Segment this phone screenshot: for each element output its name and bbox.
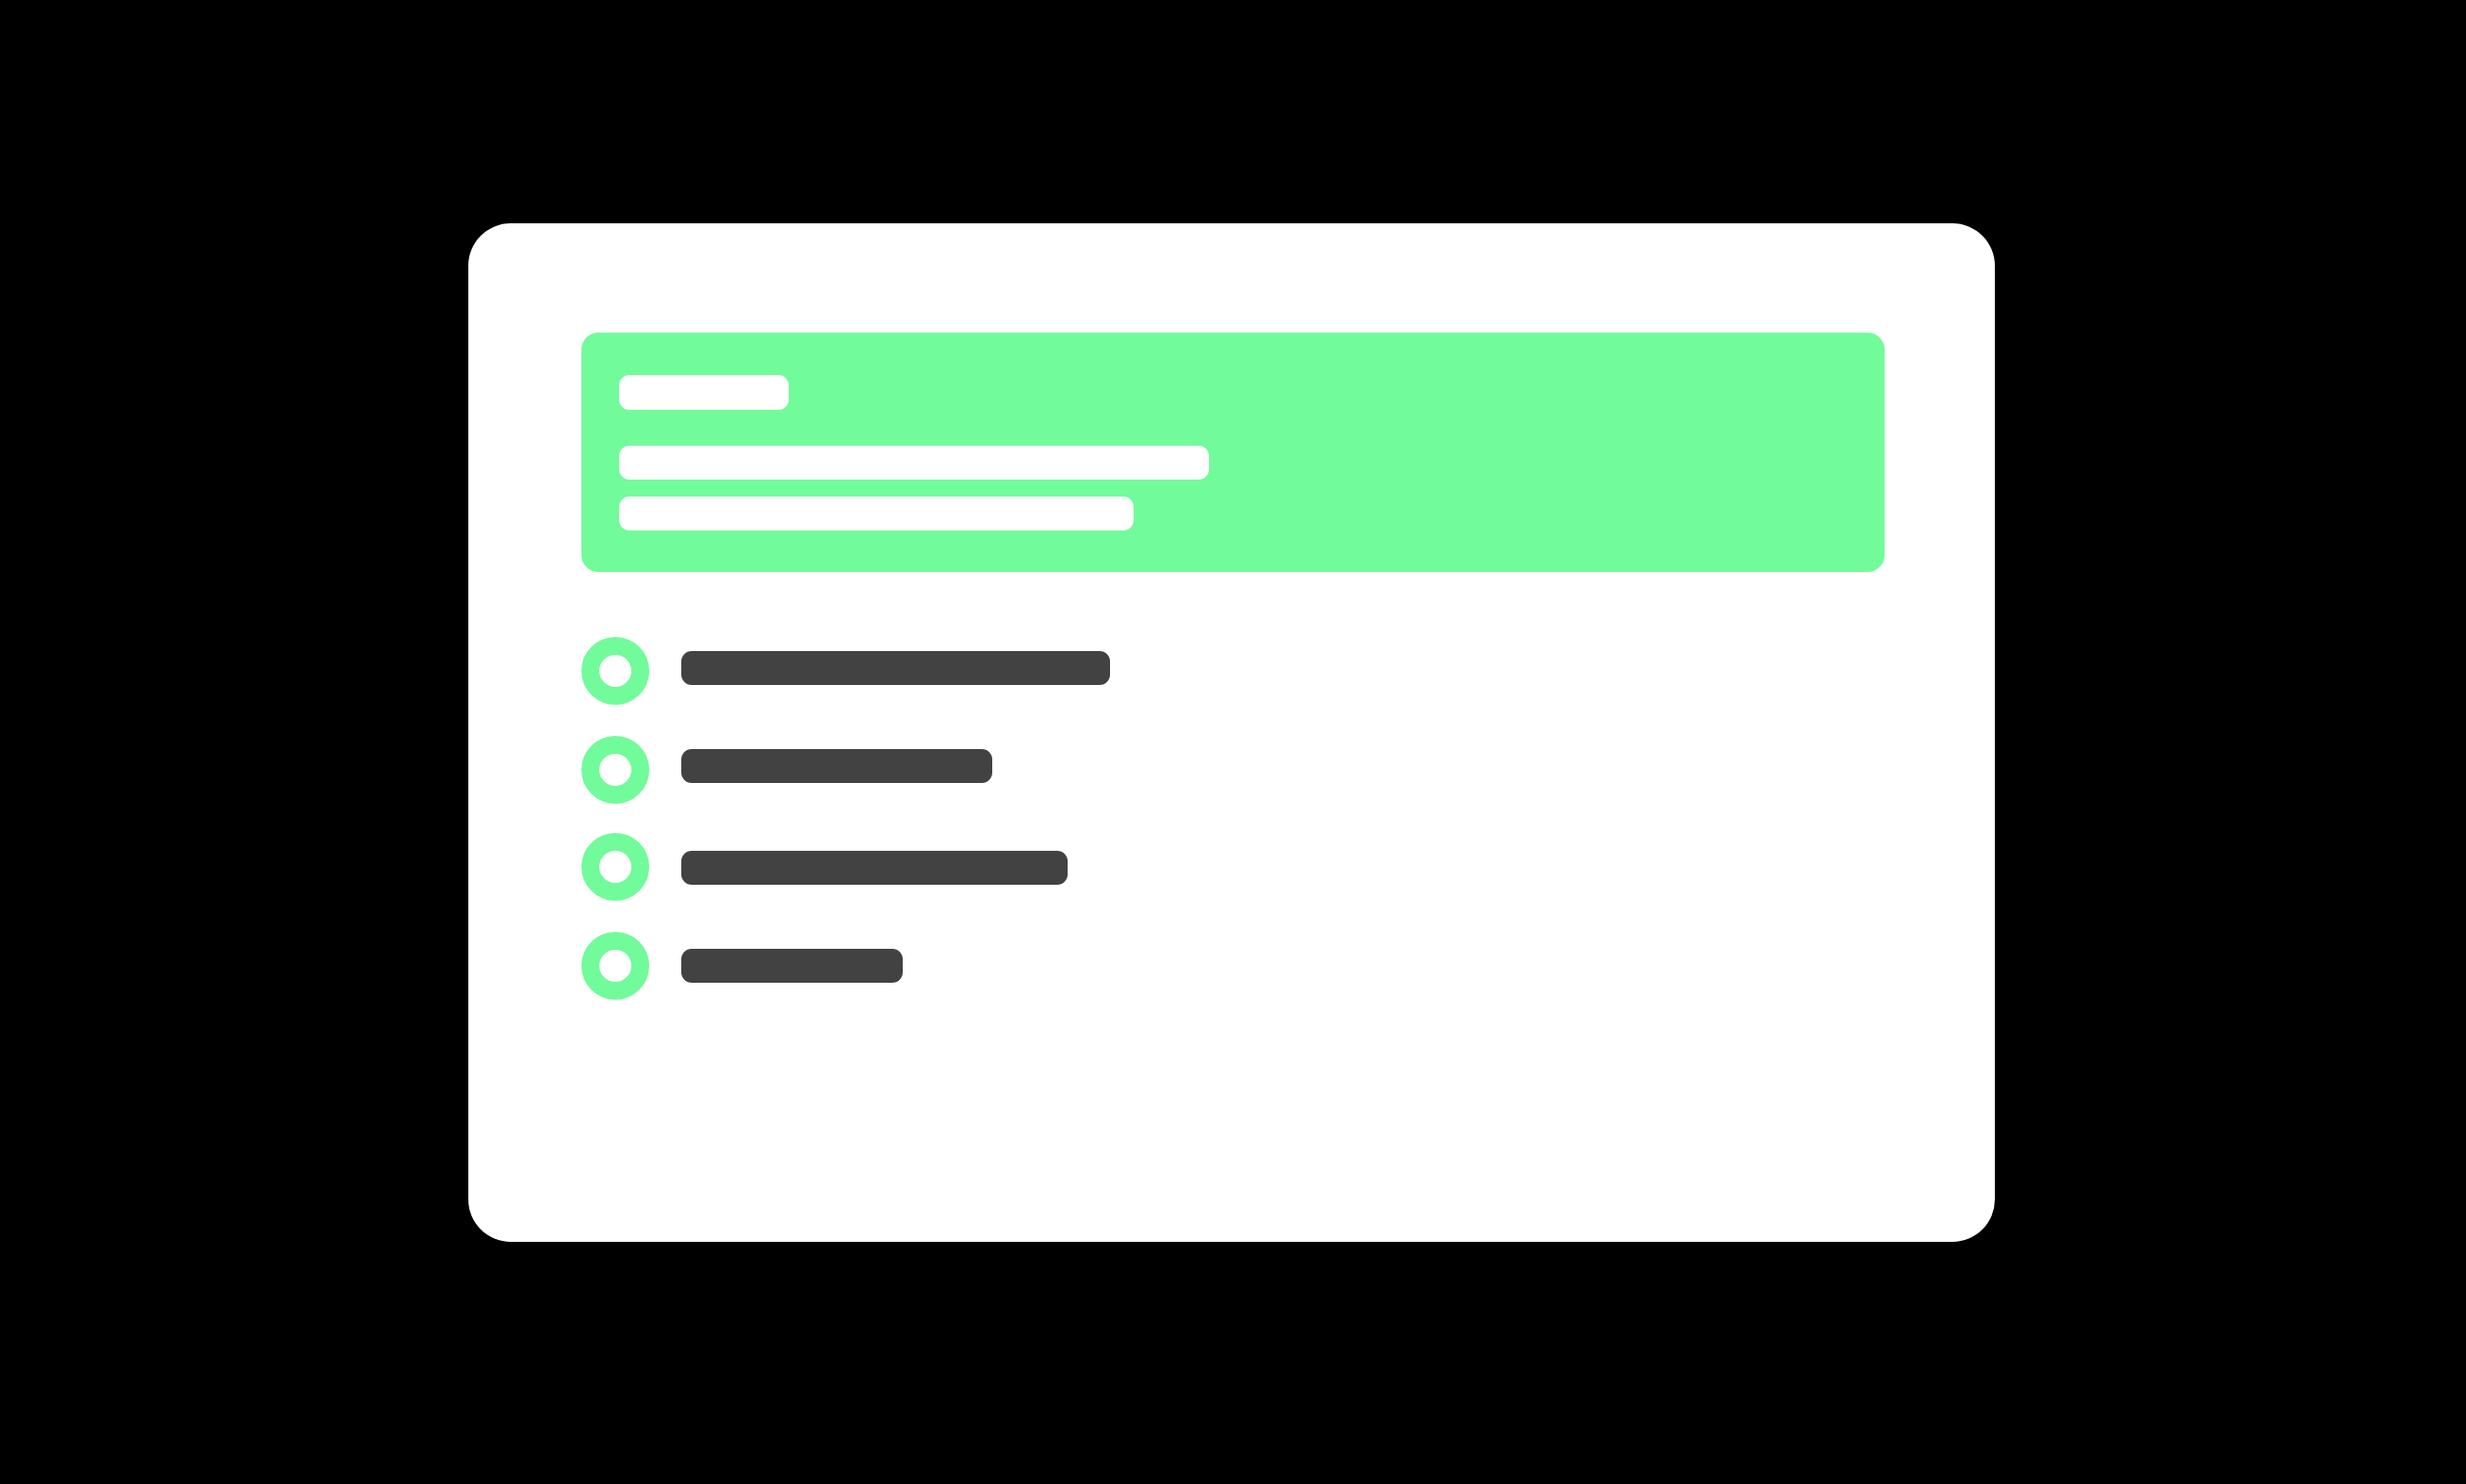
button[interactable]: List item 1 — [581, 637, 1110, 705]
button[interactable]: List item 1 — [581, 637, 649, 705]
button[interactable]: List item 2 — [581, 736, 649, 804]
button[interactable]: List item 3 — [581, 833, 1068, 901]
button[interactable]: List item 2 — [581, 736, 992, 804]
button[interactable]: List item 3 — [581, 833, 649, 901]
button[interactable]: List item 4 — [581, 932, 903, 1000]
button[interactable]: List item 4 — [581, 932, 649, 1000]
button[interactable] — [581, 333, 1885, 572]
